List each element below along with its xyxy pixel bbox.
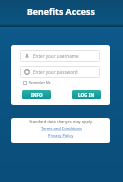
button[interactable]: Terms and Conditions: [41, 126, 82, 131]
button[interactable]: LOG IN: [72, 90, 101, 99]
staticText: INFO: [31, 92, 43, 98]
button[interactable]: Privacy Policy: [48, 133, 74, 138]
staticText: Standard data charges may apply.: [29, 119, 93, 124]
staticText: Benefits Access: [27, 6, 95, 18]
button[interactable]: Enter your password: [20, 66, 100, 78]
button[interactable]: Enter your username: [20, 50, 100, 62]
staticText: Enter your username: [33, 53, 79, 59]
button[interactable]: INFO: [22, 90, 51, 99]
staticText: Remember Me: [29, 81, 51, 85]
staticText: LOG IN: [78, 92, 95, 98]
staticText: Enter your password: [33, 69, 78, 75]
button[interactable]: Remember Me: [23, 81, 51, 85]
